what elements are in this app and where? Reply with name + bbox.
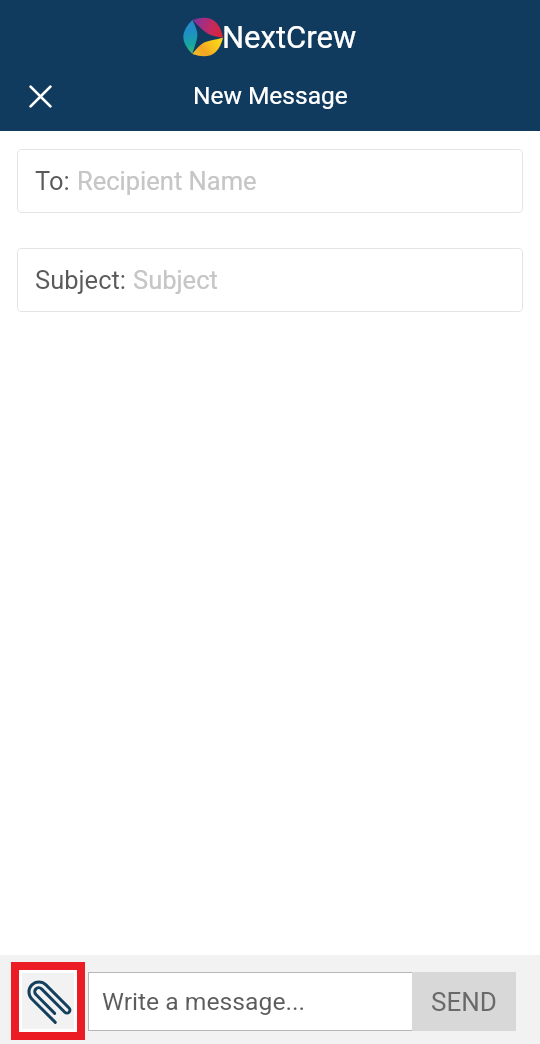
button[interactable]: Close	[12, 68, 68, 124]
staticText: Subject:	[35, 265, 133, 295]
staticText: New Message	[193, 81, 348, 110]
button[interactable]: Subject:	[17, 248, 523, 312]
staticText: NextCrew	[222, 19, 357, 55]
staticText: Subject	[133, 265, 218, 295]
button[interactable]: SEND	[412, 972, 516, 1031]
button[interactable]: To:	[17, 149, 523, 213]
staticText: To:	[35, 166, 77, 196]
staticText: SEND	[431, 987, 497, 1017]
staticText: Write a message...	[102, 987, 305, 1016]
button[interactable]: Attach file	[11, 962, 85, 1040]
button[interactable]: Write a message...	[88, 972, 413, 1031]
staticText: Recipient Name	[77, 166, 257, 196]
